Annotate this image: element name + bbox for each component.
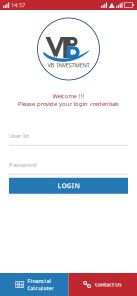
staticText: Password: [9, 161, 37, 169]
staticText: VB INVESTMENT: [47, 61, 89, 69]
button[interactable]: Financial: [0, 273, 68, 296]
staticText: LOGIN: [57, 181, 79, 190]
button[interactable]: LOGIN: [9, 178, 128, 194]
staticText: Contact Us: [95, 281, 122, 288]
staticText: Calculater: [27, 284, 53, 292]
staticText: Please provide your login credentials: [18, 100, 119, 108]
button[interactable]: Contact Us: [68, 273, 137, 296]
staticText: Financial: [27, 277, 51, 284]
staticText: Welcome !!!: [52, 92, 84, 100]
staticText: User Id: [9, 132, 29, 140]
staticText: 14:57: [11, 1, 25, 9]
